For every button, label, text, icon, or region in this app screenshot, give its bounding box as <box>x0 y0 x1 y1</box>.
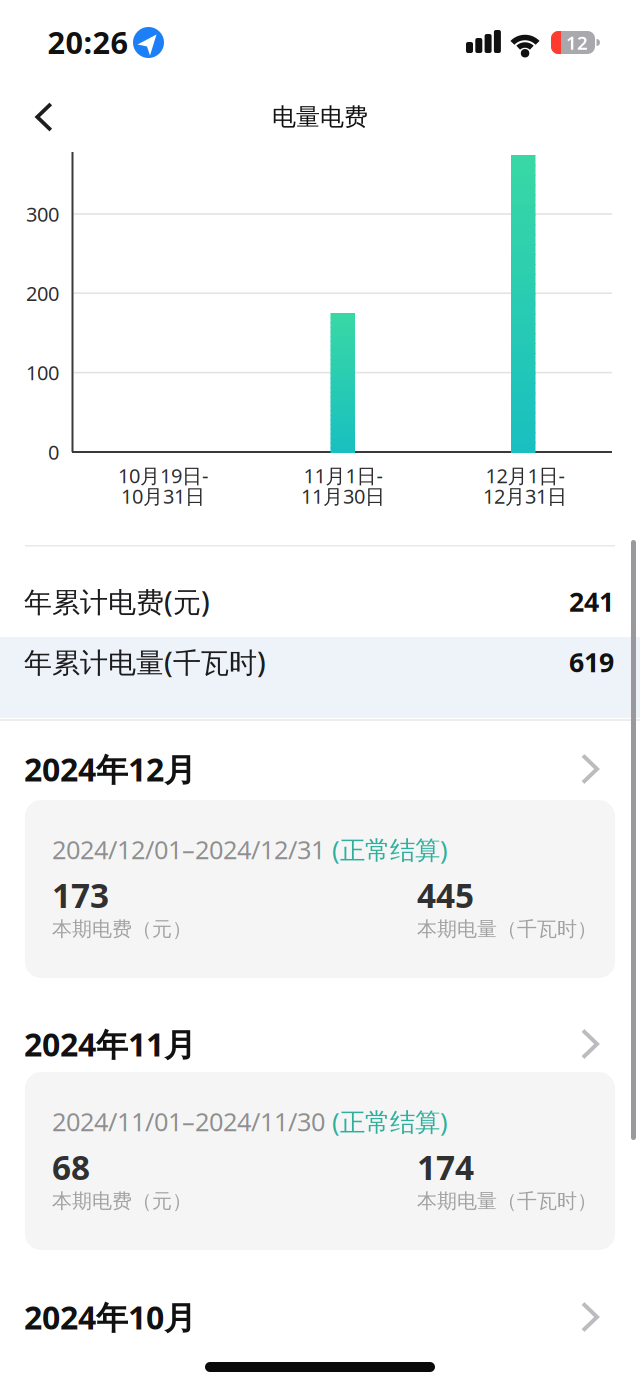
button[interactable] <box>0 0 640 1385</box>
staticText: 11月30日 <box>301 483 385 509</box>
staticText: 173 <box>52 873 109 917</box>
staticText: 20:26 <box>47 22 128 62</box>
button[interactable]: 2024/11/01–2024/11/30 <box>0 0 590 178</box>
staticText: 年累计电量(千瓦时) <box>24 643 266 681</box>
staticText: 200 <box>26 280 59 306</box>
button[interactable]: 2024年12月 <box>0 0 640 1385</box>
staticText: 10月31日 <box>121 483 205 509</box>
staticText: (正常结算) <box>325 833 448 866</box>
staticText: (正常结算) <box>325 1105 448 1138</box>
staticText: 本期电量（千瓦时） <box>417 917 597 941</box>
staticText: 68 <box>52 1145 90 1189</box>
staticText: 0 <box>48 439 59 465</box>
staticText: 619 <box>569 644 614 680</box>
staticText: 11月1日- <box>303 462 382 489</box>
staticText: 年累计电费(元) <box>24 583 210 620</box>
staticText: 12 <box>566 30 588 55</box>
staticText: 2024/11/01–2024/11/30 <box>52 1105 325 1138</box>
staticText: 本期电费（元） <box>52 917 192 941</box>
staticText: 2024/12/01–2024/12/31 <box>52 833 325 866</box>
staticText: 241 <box>569 584 614 619</box>
staticText: 445 <box>417 873 474 917</box>
staticText: 本期电费（元） <box>52 1189 192 1213</box>
staticText: 100 <box>26 359 59 386</box>
staticText: 174 <box>417 1145 474 1189</box>
staticText: 12月31日 <box>483 483 567 509</box>
staticText: 12月1日- <box>485 462 564 489</box>
button[interactable]: 2024年11月 <box>0 0 640 1385</box>
staticText: 10月19日- <box>118 462 208 489</box>
staticText: 本期电量（千瓦时） <box>417 1189 597 1213</box>
staticText: 2024年10月 <box>24 1296 196 1338</box>
staticText: 电量电费 <box>272 102 368 132</box>
button[interactable]: 2024/12/01–2024/12/31 <box>0 0 590 178</box>
staticText: 2024年12月 <box>24 748 196 790</box>
button[interactable]: 2024年10月 <box>0 0 640 1385</box>
staticText: 2024年11月 <box>24 1023 196 1065</box>
staticText: 300 <box>26 201 59 227</box>
